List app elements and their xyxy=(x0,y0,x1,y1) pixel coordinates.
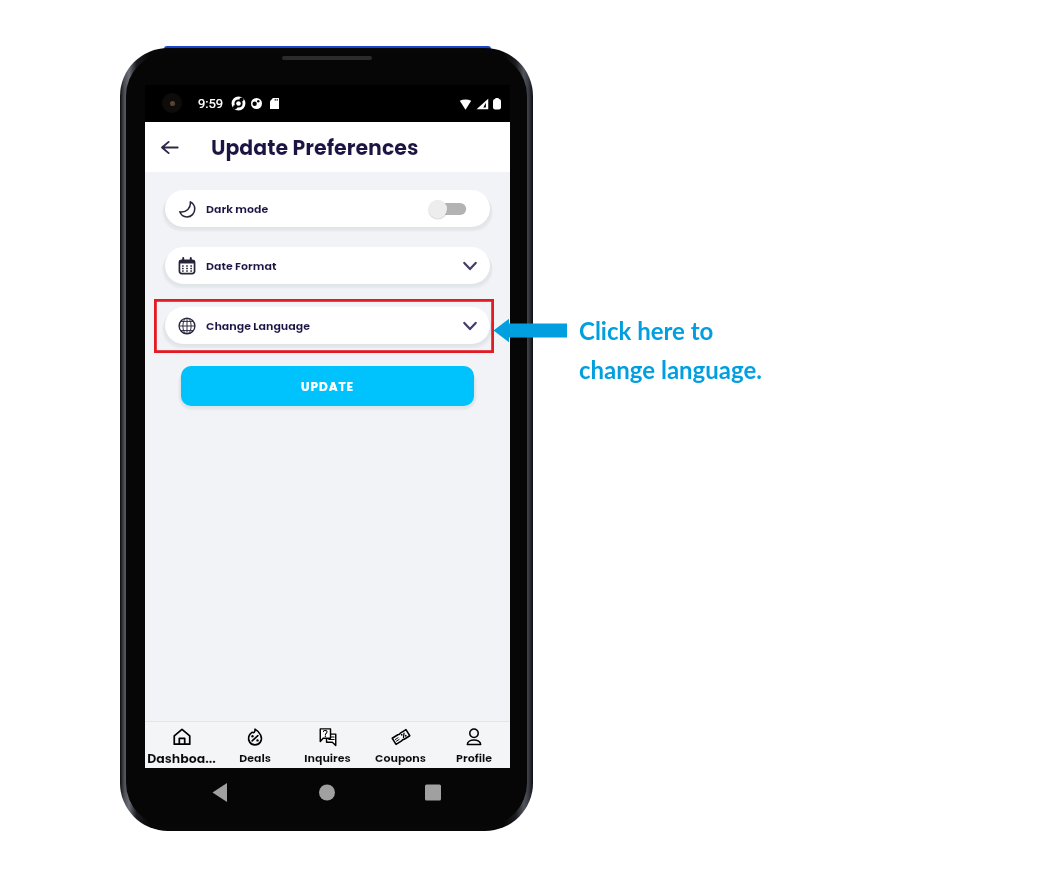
button[interactable]: Dark mode xyxy=(165,190,490,227)
staticText: Click here to xyxy=(579,316,714,345)
button[interactable]: Dark mode toggle xyxy=(428,199,477,219)
staticText: Dark mode xyxy=(206,201,269,216)
staticText: Profile xyxy=(456,750,492,765)
button[interactable]: Deals xyxy=(218,721,291,768)
staticText: Dashboa... xyxy=(147,750,216,767)
staticText: Update Preferences xyxy=(211,133,419,162)
staticText: Deals xyxy=(239,750,271,765)
button[interactable]: Date Format xyxy=(165,247,490,284)
staticText: change language. xyxy=(579,355,762,384)
button[interactable]: Profile xyxy=(437,721,510,768)
button[interactable]: Inquires xyxy=(291,721,364,768)
button[interactable]: Dashboa... xyxy=(145,721,218,768)
staticText: Date Format xyxy=(206,258,277,273)
button[interactable]: Coupons xyxy=(364,721,437,768)
button[interactable]: Back xyxy=(145,122,193,172)
staticText: Coupons xyxy=(375,750,426,765)
staticText: UPDATE xyxy=(301,378,355,395)
button[interactable]: UPDATE xyxy=(181,366,474,406)
staticText: Inquires xyxy=(304,750,351,765)
button[interactable]: Change Language xyxy=(165,307,490,344)
staticText: 9:59 xyxy=(198,96,224,111)
staticText: Change Language xyxy=(206,318,310,333)
